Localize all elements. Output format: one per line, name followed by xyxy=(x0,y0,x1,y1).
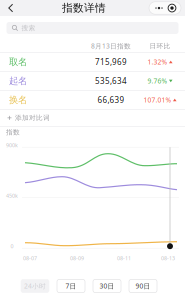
staticText: 08-09 xyxy=(70,255,84,262)
staticText: 7日 xyxy=(65,282,76,290)
staticText: 535,634 xyxy=(95,75,127,86)
button[interactable]: 搜索 xyxy=(6,22,178,34)
staticText: 指数 xyxy=(6,128,20,136)
staticText: 搜索 xyxy=(21,24,35,32)
button[interactable]: 90日 xyxy=(129,279,157,292)
button[interactable]: 24小时 xyxy=(21,279,49,292)
staticText: 1.32% xyxy=(147,57,167,66)
staticText: 66,639 xyxy=(97,94,124,105)
button[interactable]: 30日 xyxy=(93,279,121,292)
staticText: 24小时 xyxy=(24,282,46,290)
staticText: 取名 xyxy=(9,56,27,68)
staticText: 08-13 xyxy=(161,255,175,262)
staticText: 换名 xyxy=(9,94,27,106)
staticText: 30日 xyxy=(99,282,114,290)
staticText: 107.01% xyxy=(143,95,171,104)
staticText: 0 xyxy=(10,243,13,250)
staticText: 08-07 xyxy=(23,255,37,262)
staticText: 450k xyxy=(6,192,18,199)
staticText: 90日 xyxy=(135,282,150,290)
button[interactable]: Back xyxy=(0,0,19,16)
staticText: 添加对比词 xyxy=(15,114,50,122)
staticText: 9.76% xyxy=(147,76,167,85)
button[interactable]: 7日 xyxy=(57,279,85,292)
staticText: 指数详情 xyxy=(62,1,106,14)
staticText: 715,969 xyxy=(95,56,127,67)
staticText: 起名 xyxy=(9,75,27,87)
staticText: 900k xyxy=(6,142,18,149)
staticText: 08-11 xyxy=(117,255,131,262)
staticText: 日环比 xyxy=(149,42,170,50)
staticText: 8月13日指数 xyxy=(91,42,131,50)
button[interactable]: 添加对比词 xyxy=(0,110,185,126)
button[interactable]: Menu xyxy=(149,2,185,14)
